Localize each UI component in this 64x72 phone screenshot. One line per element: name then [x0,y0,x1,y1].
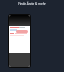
staticText: Finde Ärzte & mehr [0,2,64,6]
